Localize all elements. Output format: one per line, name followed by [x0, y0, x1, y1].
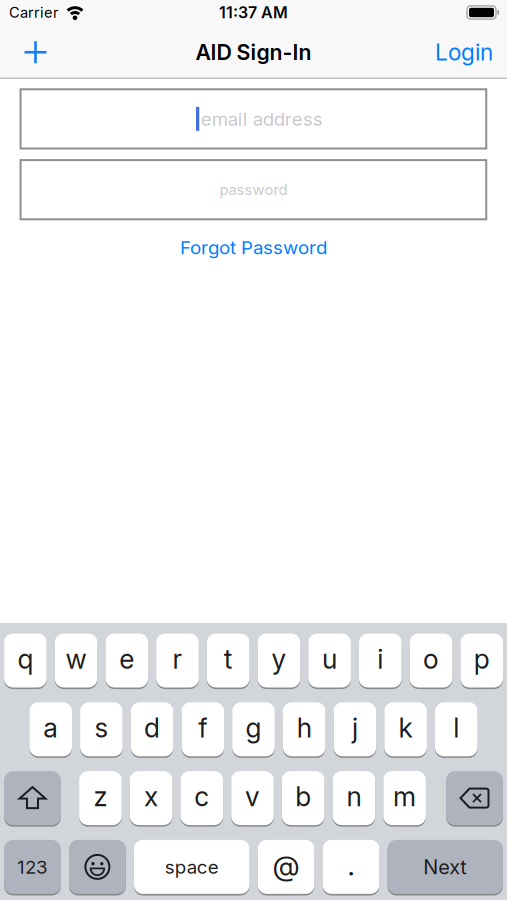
button[interactable]: i	[359, 632, 402, 688]
staticText: m	[393, 781, 416, 812]
button[interactable]: e	[105, 632, 148, 688]
button[interactable]: space	[134, 839, 250, 895]
staticText: b	[295, 781, 311, 812]
button[interactable]: h	[283, 701, 325, 757]
button[interactable]: j	[334, 701, 376, 757]
staticText: n	[346, 781, 361, 812]
staticText: f	[198, 712, 207, 744]
button[interactable]: u	[308, 632, 351, 688]
staticText: z	[93, 781, 107, 812]
staticText: e	[119, 643, 134, 675]
button[interactable]: Forgot Password	[180, 236, 327, 258]
staticText: password	[219, 181, 287, 198]
staticText: c	[194, 781, 209, 812]
button[interactable]: Emoji	[69, 839, 126, 895]
staticText: j	[352, 712, 358, 744]
staticText: w	[66, 643, 87, 675]
button[interactable]: g	[232, 701, 275, 757]
button[interactable]: z	[79, 770, 122, 826]
button[interactable]: @	[258, 839, 314, 895]
button[interactable]: .	[323, 839, 379, 895]
staticText: 11:37 AM	[219, 3, 288, 22]
button[interactable]: y	[258, 632, 300, 688]
staticText: u	[322, 643, 337, 675]
staticText: AID Sign-In	[195, 40, 311, 65]
staticText: Login	[435, 39, 493, 66]
button[interactable]: d	[131, 701, 173, 757]
staticText: v	[245, 781, 260, 812]
button[interactable]: 123	[4, 839, 61, 895]
button[interactable]: x	[130, 770, 172, 826]
button[interactable]: r	[156, 632, 199, 688]
button[interactable]: o	[410, 632, 452, 688]
button[interactable]: t	[207, 632, 249, 688]
button[interactable]: Login	[435, 39, 507, 66]
button[interactable]: Add account	[0, 41, 46, 63]
button[interactable]: b	[282, 770, 324, 826]
staticText: x	[144, 781, 158, 812]
button[interactable]: q	[4, 632, 47, 688]
staticText: space	[165, 856, 219, 878]
staticText: o	[423, 643, 439, 675]
button[interactable]: Next	[387, 839, 503, 895]
staticText: d	[144, 712, 160, 744]
staticText: 123	[17, 856, 48, 878]
button[interactable]: n	[333, 770, 375, 826]
button[interactable]: Delete	[446, 770, 503, 826]
button[interactable]: v	[231, 770, 274, 826]
staticText: Next	[423, 855, 467, 879]
staticText: h	[297, 712, 312, 744]
staticText: p	[474, 643, 490, 675]
button[interactable]: k	[384, 701, 427, 757]
button[interactable]: s	[80, 701, 123, 757]
staticText: g	[245, 712, 261, 744]
button[interactable]: l	[435, 701, 478, 757]
staticText: .	[347, 849, 354, 882]
staticText: k	[399, 712, 413, 744]
button[interactable]: m	[383, 770, 426, 826]
staticText: a	[43, 712, 58, 744]
staticText: i	[377, 643, 383, 675]
button[interactable]: p	[460, 632, 503, 688]
button[interactable]: a	[29, 701, 72, 757]
button[interactable]: Shift	[4, 770, 61, 826]
button[interactable]: w	[55, 632, 97, 688]
button[interactable]: c	[180, 770, 223, 826]
staticText: Carrier	[9, 4, 59, 21]
staticText: r	[172, 643, 182, 675]
staticText: q	[17, 643, 33, 675]
staticText: Forgot Password	[180, 236, 327, 258]
staticText: s	[94, 712, 108, 744]
staticText: @	[273, 849, 300, 882]
staticText: t	[224, 643, 233, 675]
button[interactable]: f	[181, 701, 224, 757]
staticText: y	[271, 643, 286, 675]
staticText: l	[453, 712, 459, 744]
staticText: email address	[201, 108, 323, 130]
